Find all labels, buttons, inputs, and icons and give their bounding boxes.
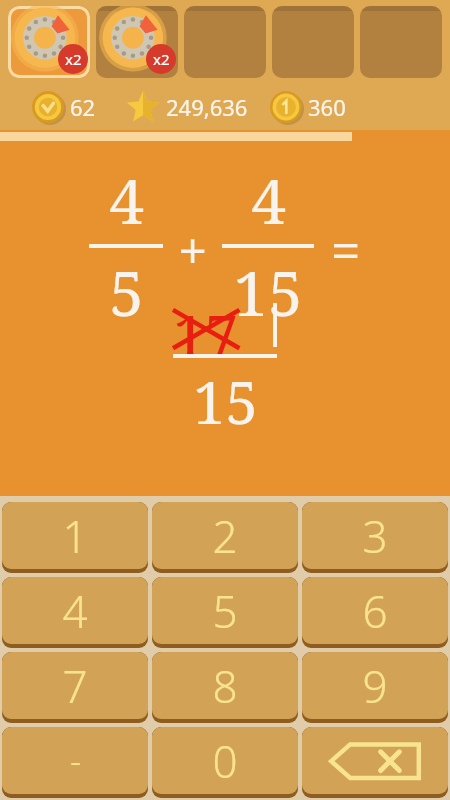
button[interactable]: Minus [2,727,148,798]
button[interactable]: 1 [2,502,148,573]
button[interactable]: 5 [152,577,298,648]
staticText: x2 [153,49,170,69]
staticText: 6 [362,581,388,641]
staticText: - [70,738,81,784]
button[interactable]: 4 [2,577,148,648]
staticText: 8 [212,656,238,716]
staticText: 5 [212,581,238,641]
button[interactable]: 2 [152,502,298,573]
staticText: 5 [109,250,144,334]
staticText: 4 [62,581,88,641]
staticText: 15 [233,250,303,334]
staticText: x2 [65,49,82,69]
button[interactable]: 249,636 [126,90,248,124]
staticText: 15 [193,362,258,441]
staticText: 62 [70,92,96,122]
staticText: 1 [62,506,88,566]
button[interactable]: 0 [152,727,298,798]
button[interactable]: Empty power up slot [360,6,442,78]
staticText: 7 [62,656,88,716]
staticText: 0 [212,731,238,791]
button[interactable]: 8 [152,652,298,723]
button[interactable]: 3 [302,502,448,573]
staticText: 2 [212,506,238,566]
button[interactable]: 62 [32,91,96,123]
staticText: = [330,213,361,287]
button[interactable]: 360 [270,91,346,123]
staticText: 3 [362,506,388,566]
button[interactable]: Empty power up slot [272,6,354,78]
button[interactable]: 6 [302,577,448,648]
button[interactable]: Backspace [302,727,448,798]
button[interactable]: Double score power up [96,6,178,78]
button[interactable]: Empty power up slot [184,6,266,78]
staticText: + [177,213,208,287]
button[interactable]: 7 [2,652,148,723]
staticText: 9 [362,656,388,716]
staticText: 4 [109,158,144,242]
staticText: 249,636 [166,92,248,122]
staticText: 4 [251,158,286,242]
button[interactable]: 9 [302,652,448,723]
button[interactable]: Double score power up [8,6,90,78]
staticText: 17 [173,296,238,354]
staticText: 360 [308,92,346,122]
